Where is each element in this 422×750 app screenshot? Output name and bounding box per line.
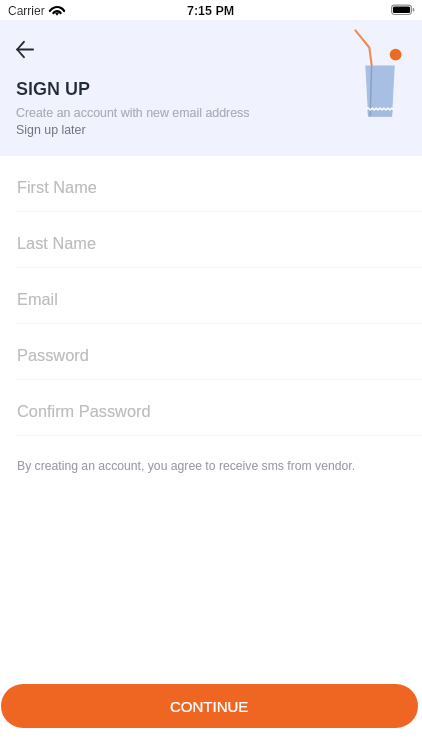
staticText: SIGN UP — [16, 79, 91, 99]
button[interactable]: CONTINUE — [1, 684, 418, 728]
button[interactable]: Last Name — [0, 212, 422, 268]
staticText: Email — [17, 290, 58, 308]
staticText: Password — [17, 346, 89, 364]
staticText: Carrier — [8, 4, 45, 17]
staticText: Last Name — [17, 234, 97, 252]
staticText: First Name — [17, 178, 97, 196]
staticText: 7:15 PM — [187, 4, 235, 18]
staticText: Confirm Password — [17, 402, 151, 420]
button[interactable]: Password — [0, 324, 422, 380]
staticText: Create an account with new email address — [16, 106, 250, 120]
staticText: By creating an account, you agree to rec… — [17, 459, 356, 473]
staticText: Sign up later — [16, 123, 86, 137]
button[interactable]: First Name — [0, 156, 422, 212]
button[interactable]: Back — [8, 33, 41, 66]
button[interactable]: Confirm Password — [0, 380, 422, 436]
button[interactable]: Sign up later — [16, 119, 86, 139]
staticText: CONTINUE — [170, 698, 249, 715]
button[interactable]: Email — [0, 268, 422, 324]
